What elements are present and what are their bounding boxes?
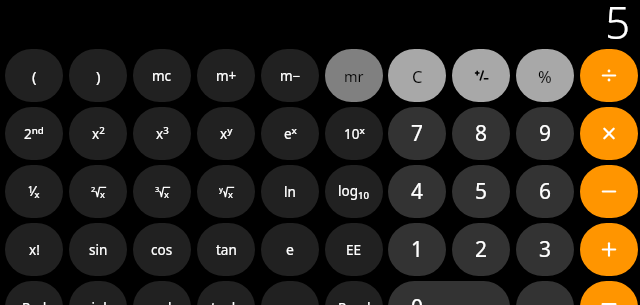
button[interactable]: xy bbox=[197, 107, 255, 160]
button[interactable]: m+ bbox=[197, 49, 255, 102]
button[interactable]: Multiply bbox=[580, 107, 638, 160]
staticText: Rand bbox=[338, 299, 371, 305]
button[interactable]: x! bbox=[5, 223, 63, 276]
staticText: tanh bbox=[211, 299, 241, 305]
button[interactable]: Cube root bbox=[133, 165, 191, 218]
staticText: Rad bbox=[22, 299, 47, 305]
button[interactable]: ( bbox=[5, 49, 63, 102]
staticText: sin bbox=[89, 241, 108, 259]
staticText: 7 bbox=[411, 119, 424, 148]
button[interactable]: 10x bbox=[325, 107, 383, 160]
button[interactable]: Rad bbox=[5, 281, 63, 305]
button[interactable]: x2 bbox=[69, 107, 127, 160]
button[interactable]: sinh bbox=[69, 281, 127, 305]
button[interactable]: Minus bbox=[580, 165, 638, 218]
staticText: mr bbox=[344, 66, 364, 86]
staticText: mc bbox=[152, 67, 172, 85]
staticText: m+ bbox=[216, 67, 237, 85]
staticText: 8 bbox=[475, 119, 488, 148]
button[interactable]: Rand bbox=[325, 281, 383, 305]
button[interactable]: log10 bbox=[325, 165, 383, 218]
button[interactable]: Square root bbox=[69, 165, 127, 218]
button[interactable]: cos bbox=[133, 223, 191, 276]
staticText: cos bbox=[151, 241, 173, 259]
button[interactable]: 8 bbox=[452, 107, 510, 160]
staticText: 5 bbox=[605, 0, 631, 41]
button[interactable]: . bbox=[516, 281, 574, 305]
button[interactable]: mc bbox=[133, 49, 191, 102]
button[interactable]: 2 bbox=[452, 223, 510, 276]
staticText: % bbox=[538, 65, 552, 87]
staticText: ( bbox=[32, 66, 37, 86]
staticText: 9 bbox=[539, 119, 552, 148]
staticText: ) bbox=[96, 66, 101, 86]
button[interactable]: ex bbox=[261, 107, 319, 160]
staticText: 3 bbox=[539, 235, 552, 264]
staticText: sinh bbox=[85, 299, 112, 305]
staticText: ex bbox=[284, 124, 297, 143]
staticText: 1 bbox=[411, 235, 424, 264]
button[interactable]: C bbox=[388, 49, 446, 102]
staticText: 5 bbox=[475, 177, 488, 206]
staticText: x bbox=[228, 188, 233, 200]
button[interactable]: Plus minus bbox=[452, 49, 510, 102]
button[interactable]: 6 bbox=[516, 165, 574, 218]
button[interactable]: π bbox=[261, 281, 319, 305]
button[interactable]: Y root bbox=[197, 165, 255, 218]
staticText: xy bbox=[220, 124, 233, 143]
button[interactable]: EE bbox=[325, 223, 383, 276]
staticText: 10x bbox=[344, 124, 365, 143]
button[interactable]: % bbox=[516, 49, 574, 102]
staticText: 1⁄x bbox=[28, 182, 40, 201]
button[interactable]: e bbox=[261, 223, 319, 276]
staticText: EE bbox=[346, 241, 362, 259]
staticText: e bbox=[286, 240, 294, 259]
button[interactable]: cosh bbox=[133, 281, 191, 305]
button[interactable]: mr bbox=[325, 49, 383, 102]
button[interactable]: 4 bbox=[388, 165, 446, 218]
button[interactable]: m− bbox=[261, 49, 319, 102]
staticText: x bbox=[164, 188, 169, 200]
button[interactable]: ) bbox=[69, 49, 127, 102]
staticText: C bbox=[412, 65, 423, 87]
button[interactable]: 7 bbox=[388, 107, 446, 160]
button[interactable]: 3 bbox=[516, 223, 574, 276]
button[interactable]: One over x bbox=[5, 165, 63, 218]
staticText: x2 bbox=[92, 124, 105, 143]
staticText: 3 bbox=[155, 184, 160, 194]
button[interactable]: 5 bbox=[452, 165, 510, 218]
staticText: 4 bbox=[411, 177, 424, 206]
button[interactable]: Equals bbox=[580, 281, 638, 305]
staticText: cosh bbox=[147, 299, 177, 305]
button[interactable]: ln bbox=[261, 165, 319, 218]
staticText: 2 bbox=[475, 235, 488, 264]
staticText: ln bbox=[284, 183, 296, 201]
button[interactable]: 2nd bbox=[5, 107, 63, 160]
button[interactable]: 9 bbox=[516, 107, 574, 160]
button[interactable]: sin bbox=[69, 223, 127, 276]
staticText: x bbox=[100, 188, 105, 200]
button[interactable]: 1 bbox=[388, 223, 446, 276]
staticText: x! bbox=[29, 241, 40, 259]
staticText: 2nd bbox=[24, 124, 44, 143]
button[interactable]: 0 bbox=[388, 281, 510, 305]
staticText: y bbox=[219, 184, 223, 194]
staticText: log10 bbox=[338, 182, 370, 202]
button[interactable]: tanh bbox=[197, 281, 255, 305]
button[interactable]: tan bbox=[197, 223, 255, 276]
button[interactable]: Plus bbox=[580, 223, 638, 276]
button[interactable]: x3 bbox=[133, 107, 191, 160]
staticText: 2 bbox=[91, 184, 96, 194]
button[interactable]: Divide bbox=[580, 49, 638, 102]
staticText: m− bbox=[280, 67, 301, 85]
staticText: tan bbox=[216, 241, 237, 259]
staticText: x3 bbox=[156, 124, 169, 143]
staticText: 6 bbox=[539, 177, 552, 206]
staticText: 0 bbox=[411, 293, 424, 305]
